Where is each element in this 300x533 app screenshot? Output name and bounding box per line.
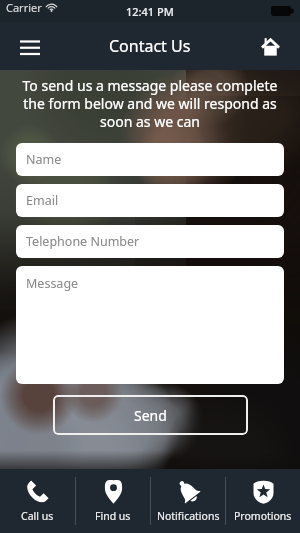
staticText: Notifications: [157, 509, 220, 523]
staticText: Telephone Number: [26, 233, 140, 250]
staticText: Email: [26, 192, 59, 209]
button[interactable]: Find us: [76, 469, 150, 533]
staticText: Find us: [95, 509, 131, 523]
button[interactable]: Message: [16, 266, 284, 384]
staticText: Promotions: [234, 509, 292, 523]
staticText: Name: [26, 151, 62, 168]
button[interactable]: Notifications: [151, 469, 225, 533]
staticText: To send us a message please complete the…: [10, 76, 290, 131]
button[interactable]: Name: [16, 143, 284, 176]
button[interactable]: Call us: [0, 469, 75, 533]
button[interactable]: Email: [16, 184, 284, 217]
staticText: Contact Us: [109, 35, 191, 57]
button[interactable]: Telephone Number: [16, 225, 284, 258]
button[interactable]: Promotions: [226, 469, 300, 533]
button[interactable]: Send: [53, 395, 248, 435]
staticText: Carrier: [6, 0, 42, 15]
staticText: Send: [134, 406, 167, 425]
staticText: 12:41 PM: [126, 4, 174, 19]
staticText: Call us: [21, 509, 54, 523]
button[interactable]: Home: [250, 26, 290, 66]
button[interactable]: Menu: [10, 26, 50, 66]
staticText: Message: [26, 275, 79, 292]
